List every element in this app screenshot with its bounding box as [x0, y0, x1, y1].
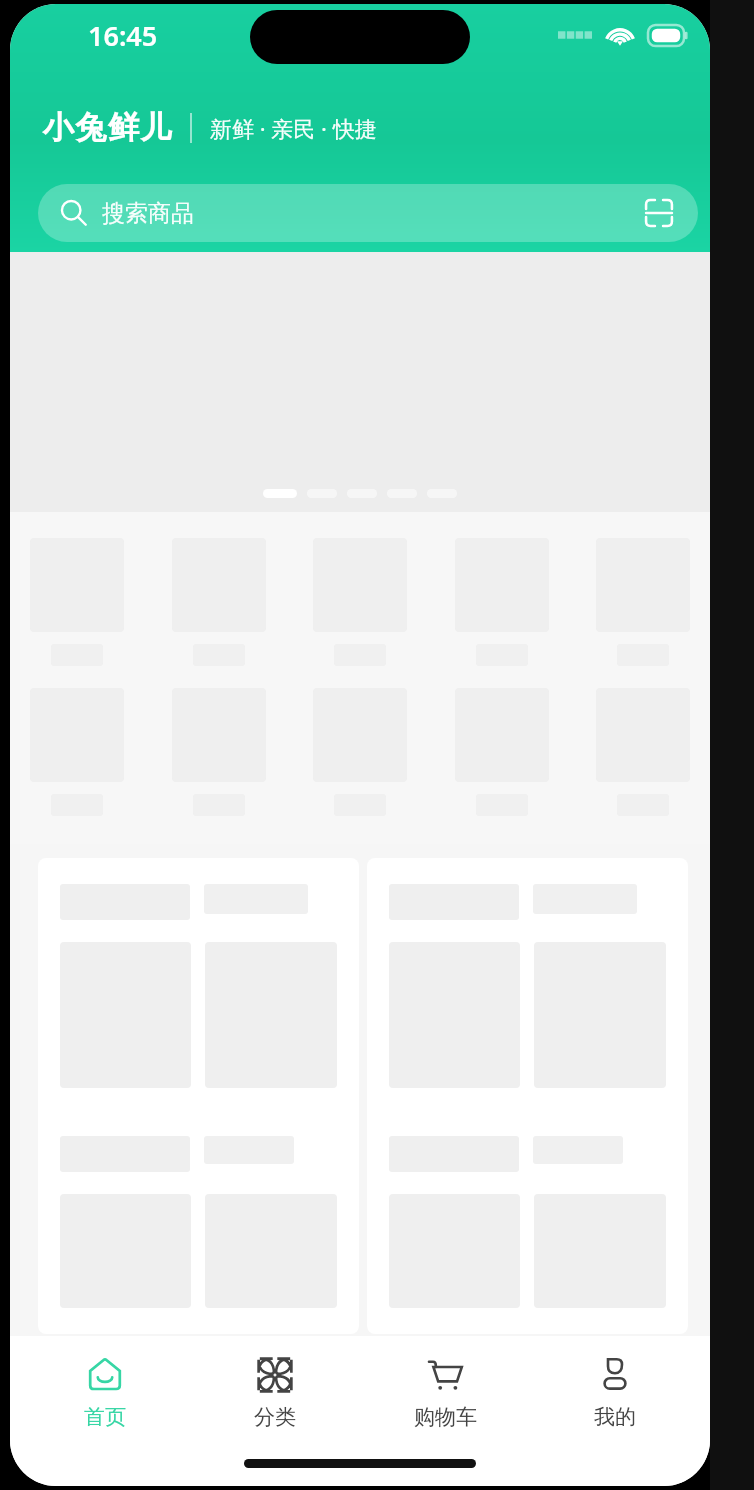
staticText: 小兔鲜儿	[42, 108, 172, 147]
staticText: 购物车	[414, 1404, 477, 1430]
button[interactable]: 首页	[30, 1352, 180, 1432]
button[interactable]: 我的	[540, 1352, 690, 1432]
button[interactable]: 分类	[200, 1352, 350, 1432]
staticText: 16:45	[88, 17, 158, 54]
staticText: 分类	[254, 1404, 296, 1430]
button[interactable]: Scan code	[642, 196, 676, 230]
staticText: 我的	[594, 1404, 636, 1430]
staticText: 新鲜 · 亲民 · 快捷	[210, 113, 377, 143]
button[interactable]: 搜索商品	[38, 184, 698, 242]
button[interactable]: 购物车	[370, 1352, 520, 1432]
staticText: 首页	[84, 1404, 126, 1430]
button[interactable]	[38, 858, 359, 1334]
staticText: 搜索商品	[102, 199, 194, 228]
button[interactable]	[367, 858, 688, 1334]
